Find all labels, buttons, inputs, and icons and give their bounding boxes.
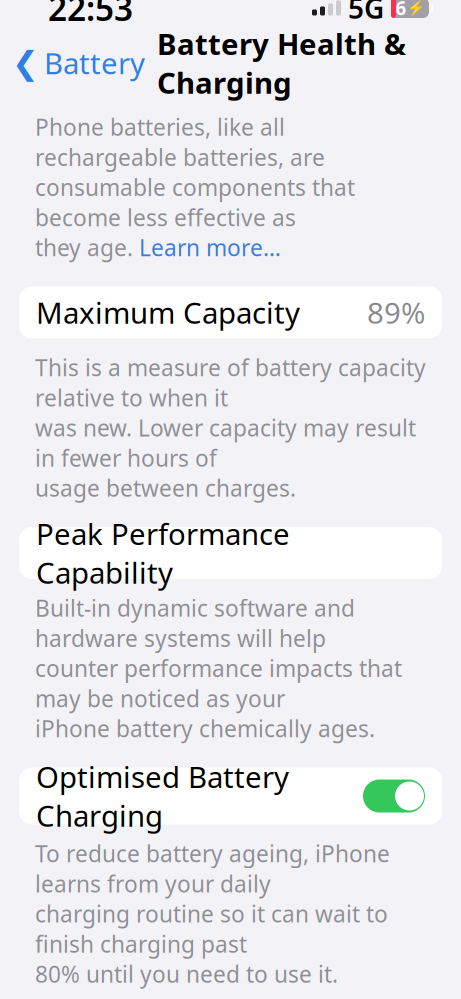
button[interactable]: ❮ [12, 37, 145, 88]
staticText: Battery Health & Charging [157, 24, 406, 102]
button[interactable]: Maximum Capacity [19, 286, 442, 338]
staticText: ⚡ [406, 0, 424, 16]
staticText: Built-in dynamic software and hardware s… [35, 593, 355, 653]
staticText: 80% until you need to use it. [35, 959, 338, 989]
staticText: they age. [35, 232, 139, 262]
staticText: consumable components that become less e… [35, 172, 355, 232]
staticText: ❮ [12, 45, 39, 81]
staticText: To reduce battery ageing, iPhone learns … [35, 838, 390, 899]
staticText: Learn more… [139, 232, 281, 262]
staticText: 5G [348, 0, 384, 27]
staticText: Maximum Capacity [36, 293, 300, 332]
staticText: 22:53 [48, 0, 133, 30]
staticText: was new. Lower capacity may result in fe… [35, 413, 416, 473]
button[interactable]: Peak Performance Capability [19, 527, 442, 579]
staticText: iPhone battery chemically ages. [35, 713, 375, 743]
button[interactable]: Learn more… [139, 232, 281, 262]
staticText: This is a measure of battery capacity re… [35, 352, 426, 413]
button[interactable]: Optimised Battery Charging [19, 767, 442, 824]
staticText: counter performance impacts that may be … [35, 653, 402, 713]
staticText: Peak Performance Capability [36, 514, 290, 592]
staticText: Battery [44, 43, 145, 82]
staticText: 6 [395, 0, 406, 20]
staticText: Phone batteries, like all rechargeable b… [35, 112, 325, 172]
staticText: charging routine so it can wait to finis… [35, 899, 388, 959]
staticText: 89% [367, 293, 425, 332]
staticText: usage between charges. [35, 473, 296, 503]
staticText: Optimised Battery Charging [36, 757, 289, 835]
